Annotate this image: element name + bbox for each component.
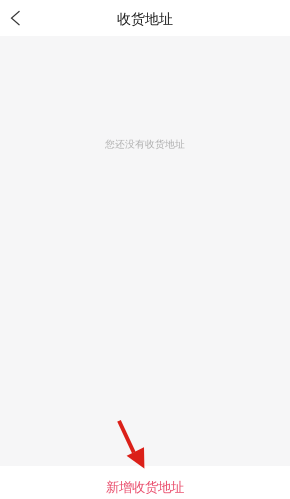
- staticText: 您还没有收货地址: [105, 138, 185, 150]
- staticText: 收货地址: [117, 10, 173, 28]
- button[interactable]: Back: [0, 0, 34, 37]
- button[interactable]: 新增收货地址: [0, 466, 290, 499]
- staticText: 新增收货地址: [106, 479, 184, 496]
